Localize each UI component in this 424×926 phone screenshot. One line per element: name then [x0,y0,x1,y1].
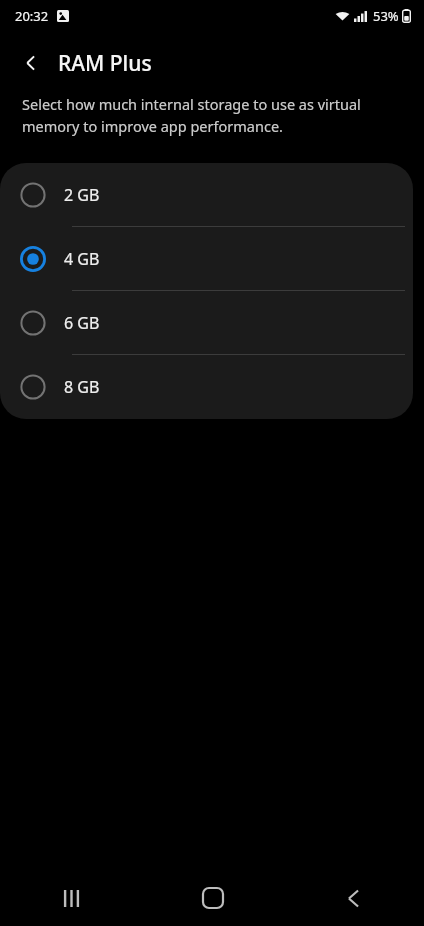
button[interactable]: 6 GB [0,291,413,355]
staticText: 20:32 [15,7,49,25]
staticText: 2 GB [64,184,100,206]
button[interactable]: Recent apps [0,870,142,926]
button[interactable]: 8 GB [0,355,413,419]
button[interactable]: 4 GB [0,227,413,291]
button[interactable]: Back [283,870,424,926]
staticText: 6 GB [64,312,100,334]
button[interactable]: Back [10,42,52,84]
button[interactable]: Home [142,870,283,926]
staticText: 4 GB [64,248,100,270]
staticText: 8 GB [64,376,100,398]
staticText: 53% [373,7,399,25]
staticText: RAM Plus [58,49,152,78]
button[interactable]: 2 GB [0,163,413,227]
staticText: Select how much internal storage to use … [22,94,388,136]
